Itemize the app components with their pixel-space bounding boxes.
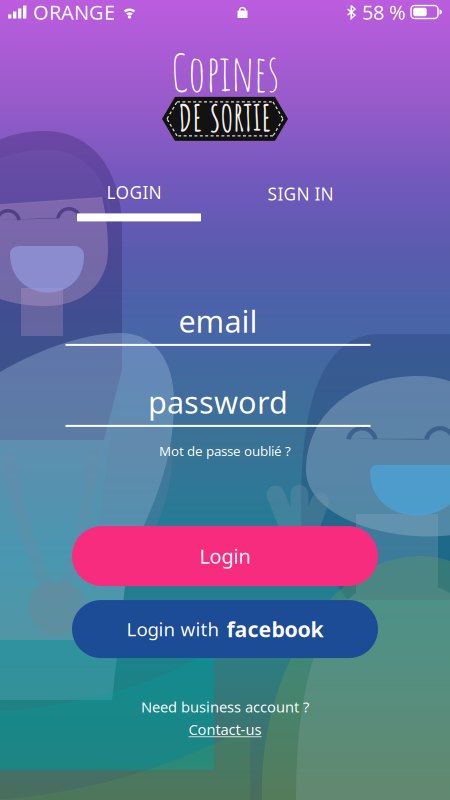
button[interactable]: Mot de passe oublié ? (147, 437, 303, 465)
staticText: Mot de passe oublié ? (159, 442, 291, 460)
staticText: Login with (126, 617, 219, 641)
staticText: DE SORTIE (178, 95, 271, 141)
button[interactable]: Login (72, 526, 378, 586)
button[interactable]: LOGIN (64, 184, 204, 220)
staticText: facebook (226, 615, 323, 643)
staticText: Login (199, 543, 250, 569)
staticText: SIGN IN (267, 182, 333, 205)
staticText: email (178, 300, 257, 341)
staticText: password (148, 381, 288, 422)
staticText: Copines (171, 40, 279, 104)
staticText: 58 % (362, 0, 406, 25)
staticText: Need business account ? (141, 697, 309, 716)
button[interactable]: Contact-us (180, 719, 269, 739)
button[interactable]: SIGN IN (240, 184, 360, 204)
staticText: LOGIN (106, 181, 161, 204)
staticText: Contact-us (188, 719, 261, 739)
staticText: ORANGE (33, 0, 115, 25)
button[interactable]: Login with (72, 600, 378, 658)
